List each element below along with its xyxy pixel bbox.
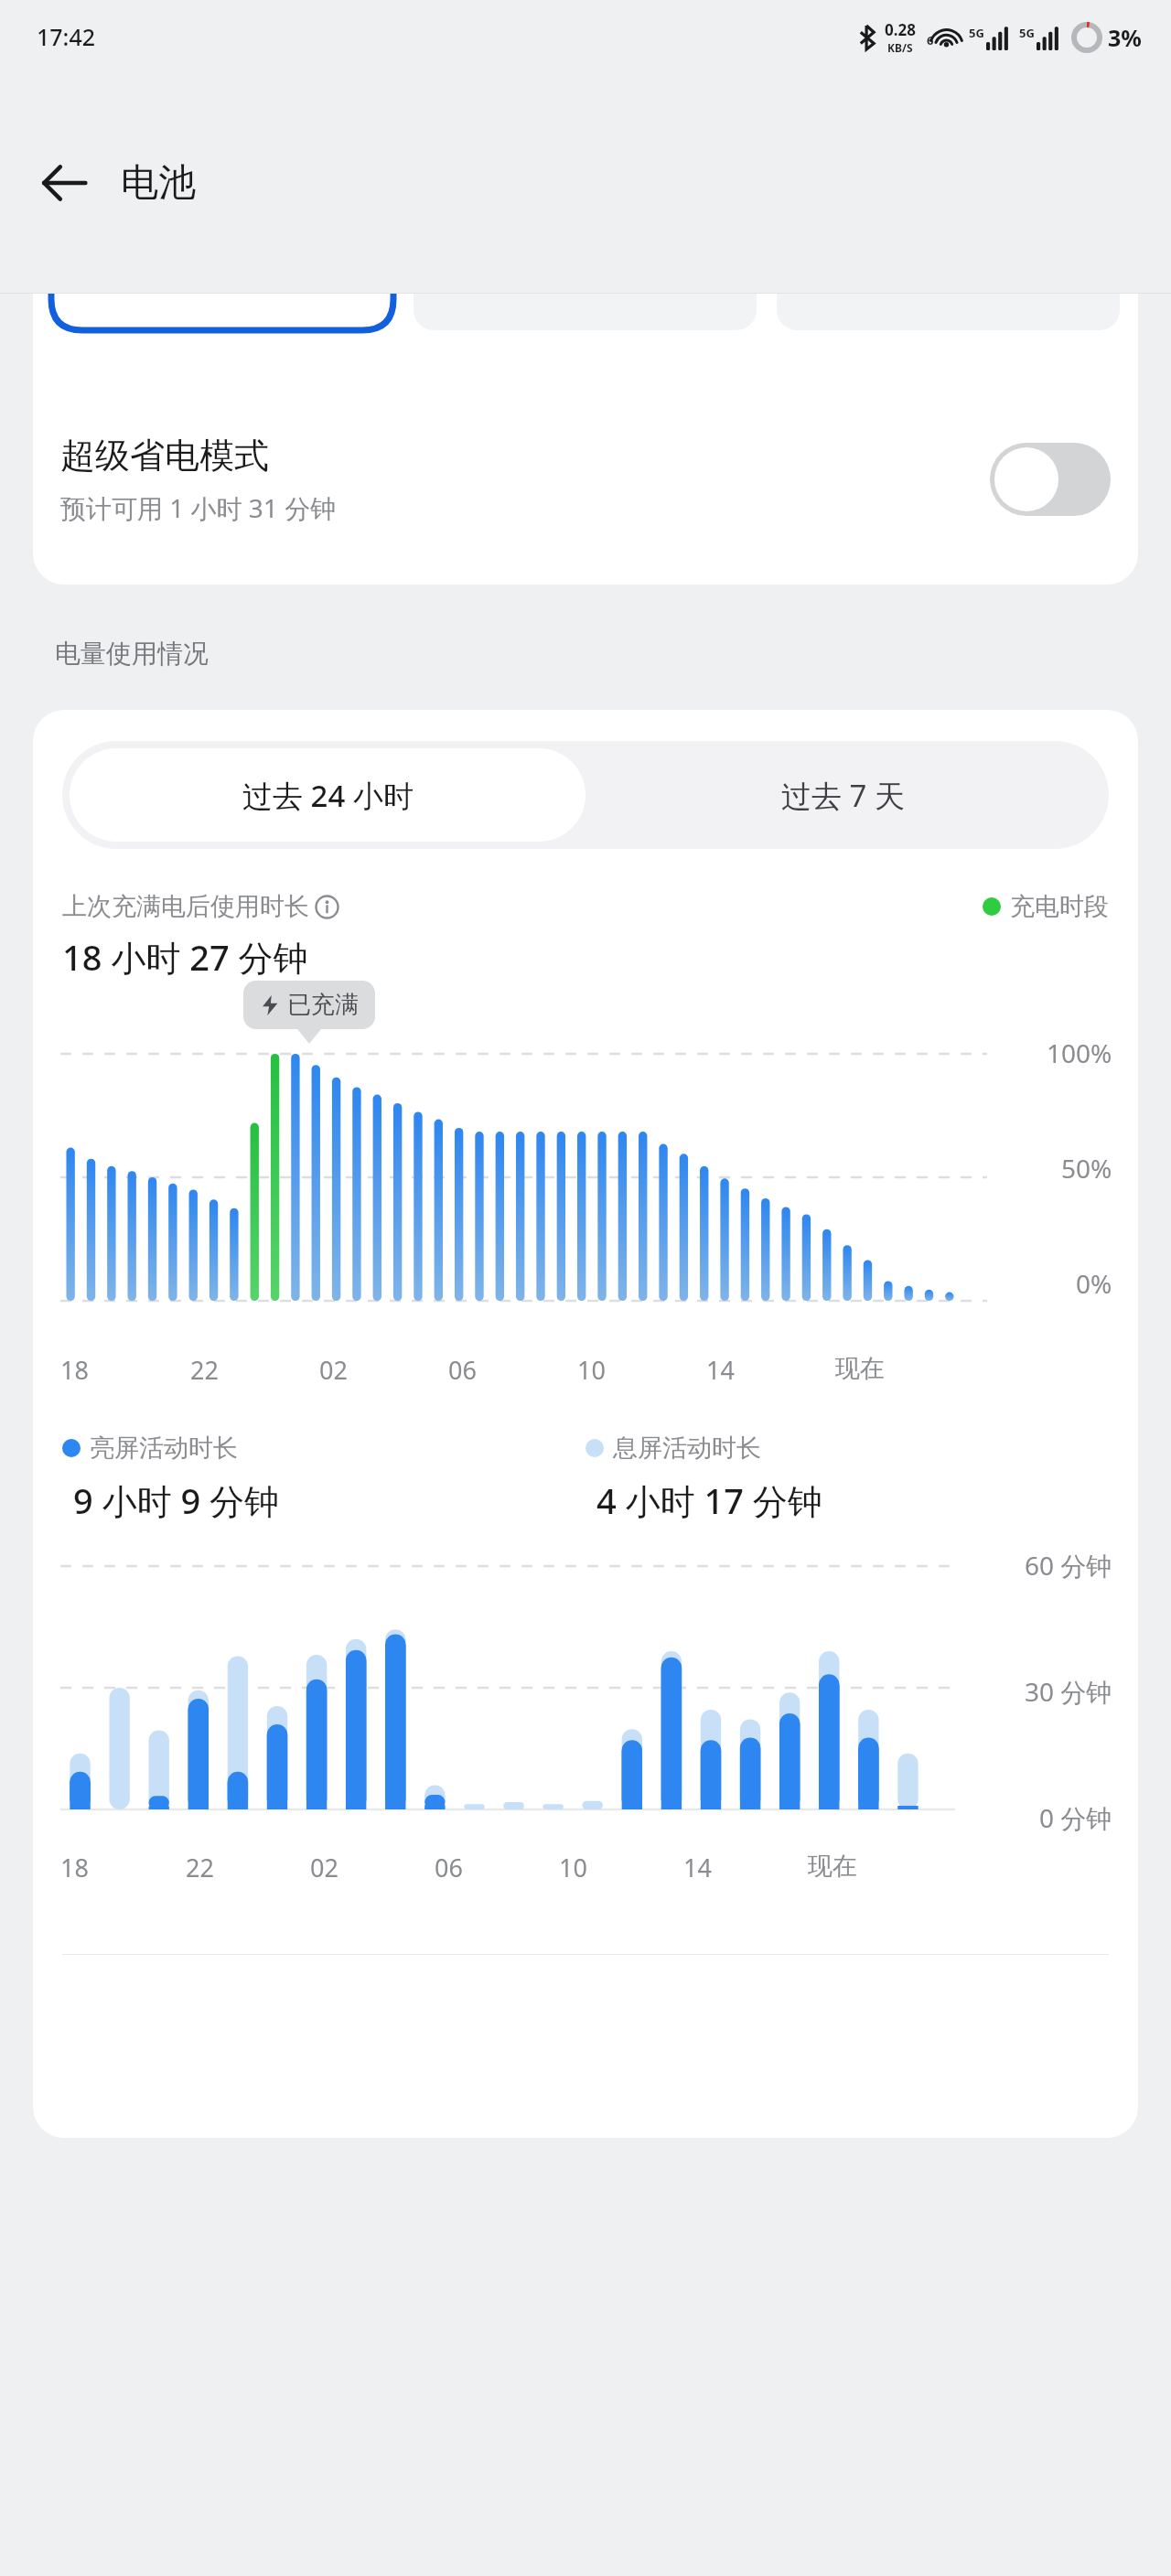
staticText: 超级省电模式 bbox=[60, 434, 269, 478]
staticText: 10 bbox=[559, 1851, 683, 1884]
staticText: 现在 bbox=[808, 1851, 932, 1882]
button[interactable]: 超级省电模式 bbox=[33, 374, 1138, 585]
staticText: 14 bbox=[706, 1353, 835, 1387]
staticText: 10 bbox=[577, 1353, 706, 1387]
staticText: 06 bbox=[448, 1353, 577, 1387]
staticText: 0% bbox=[1076, 1266, 1112, 1301]
staticText: 息屏活动时长 bbox=[613, 1433, 761, 1464]
staticText: 100% bbox=[1047, 1036, 1112, 1070]
staticText: 60 分钟 bbox=[1025, 1548, 1112, 1583]
staticText: 17:42 bbox=[37, 21, 96, 52]
staticText: 9 小时 9 分钟 bbox=[73, 1476, 280, 1524]
staticText: 18 bbox=[60, 1851, 186, 1884]
staticText: 已充满 bbox=[287, 990, 359, 1020]
staticText: 3% bbox=[1108, 22, 1142, 53]
staticText: 14 bbox=[683, 1851, 808, 1884]
staticText: 0.28 bbox=[885, 19, 916, 40]
staticText: 22 bbox=[190, 1353, 319, 1387]
staticText: 0 分钟 bbox=[1039, 1800, 1112, 1835]
staticText: 22 bbox=[186, 1851, 310, 1884]
staticText: 亮屏活动时长 bbox=[90, 1433, 238, 1464]
staticText: 过去 24 小时 bbox=[242, 775, 414, 816]
staticText: 预计可用 1 小时 31 分钟 bbox=[60, 490, 337, 525]
staticText: 18 bbox=[60, 1353, 190, 1387]
staticText: 4 小时 17 分钟 bbox=[596, 1476, 822, 1524]
staticText: 现在 bbox=[835, 1353, 964, 1384]
button[interactable]: 过去 7 天 bbox=[585, 748, 1101, 842]
button[interactable]: 超级省电模式开关 bbox=[990, 443, 1111, 516]
button[interactable]: 过去 24 小时 bbox=[70, 748, 585, 842]
staticText: 6 bbox=[927, 32, 934, 48]
staticText: 02 bbox=[319, 1353, 448, 1387]
staticText: 06 bbox=[435, 1851, 559, 1884]
staticText: 电池 bbox=[121, 159, 196, 207]
staticText: 5G bbox=[969, 25, 984, 41]
staticText: 上次充满电后使用时长 bbox=[62, 891, 309, 922]
button[interactable]: 返回 bbox=[18, 137, 110, 229]
staticText: 过去 7 天 bbox=[781, 775, 906, 816]
staticText: 5G bbox=[1019, 25, 1035, 41]
staticText: 18 小时 27 分钟 bbox=[62, 933, 308, 981]
button[interactable] bbox=[51, 294, 393, 330]
staticText: 充电时段 bbox=[1010, 891, 1109, 922]
staticText: 50% bbox=[1061, 1151, 1112, 1186]
staticText: 30 分钟 bbox=[1025, 1674, 1112, 1709]
staticText: KB/S bbox=[887, 40, 913, 55]
staticText: 电量使用情况 bbox=[55, 638, 209, 670]
staticText: 02 bbox=[310, 1851, 435, 1884]
